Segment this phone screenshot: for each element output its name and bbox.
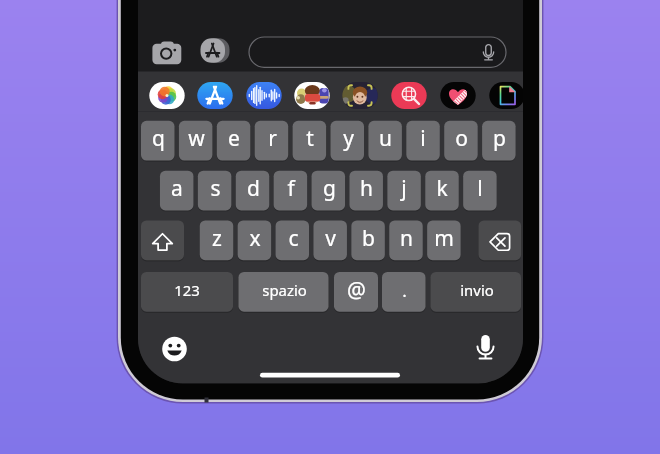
staticText: l <box>477 174 483 203</box>
staticText: a <box>171 174 183 203</box>
staticText: h <box>360 174 373 203</box>
button[interactable]: f <box>274 171 308 211</box>
staticText: e <box>228 124 240 153</box>
staticText: o <box>455 124 468 153</box>
staticText: r <box>268 124 277 153</box>
button[interactable]: App Store <box>200 37 230 65</box>
button[interactable]: r <box>255 121 289 161</box>
staticText: u <box>379 124 392 153</box>
button[interactable]: Camera <box>153 40 183 64</box>
button[interactable]: q <box>141 121 175 161</box>
button[interactable]: d <box>236 171 270 211</box>
button[interactable]: Shift <box>141 221 184 261</box>
button[interactable]: p <box>482 121 516 161</box>
button[interactable]: c <box>276 221 310 261</box>
staticText: q <box>152 124 165 153</box>
button[interactable]: invio <box>431 272 522 312</box>
button[interactable]: t <box>293 121 327 161</box>
button[interactable]: h <box>349 171 383 211</box>
staticText: m <box>434 224 454 253</box>
button[interactable]: a <box>160 171 194 211</box>
staticText: x <box>249 224 261 253</box>
staticText: k <box>436 174 448 203</box>
button[interactable]: u <box>368 121 402 161</box>
button[interactable]: z <box>200 221 234 261</box>
button[interactable]: e <box>217 121 251 161</box>
staticText: s <box>210 174 221 203</box>
staticText: f <box>287 174 295 203</box>
button[interactable]: Dictation <box>473 335 499 361</box>
button[interactable]: s <box>198 171 232 211</box>
button[interactable]: i <box>406 121 440 161</box>
button[interactable]: l <box>463 171 497 211</box>
staticText: spazio <box>262 280 307 300</box>
button[interactable]: m <box>427 221 461 261</box>
staticText: i <box>420 124 426 153</box>
button[interactable]: Emoji keyboard <box>162 337 187 362</box>
staticText: b <box>362 224 375 253</box>
button[interactable]: 123 <box>141 272 233 312</box>
button[interactable]: y <box>331 121 365 161</box>
staticText: t <box>306 124 314 153</box>
staticText: invio <box>460 280 494 300</box>
button[interactable]: k <box>425 171 459 211</box>
staticText: z <box>212 224 222 253</box>
staticText: y <box>343 124 354 153</box>
button[interactable]: o <box>444 121 478 161</box>
button[interactable]: v <box>313 221 347 261</box>
staticText: @ <box>347 276 366 305</box>
button[interactable]: n <box>389 221 423 261</box>
staticText: g <box>323 174 336 203</box>
staticText: 123 <box>174 280 200 300</box>
button[interactable]: x <box>238 221 272 261</box>
button[interactable]: spazio <box>239 272 329 312</box>
button[interactable]: Backspace <box>479 221 522 261</box>
staticText: p <box>493 124 506 153</box>
staticText: . <box>402 279 407 302</box>
staticText: v <box>325 224 336 253</box>
button[interactable]: b <box>351 221 385 261</box>
staticText: w <box>188 124 205 153</box>
staticText: n <box>400 224 413 253</box>
button[interactable]: . <box>382 272 426 312</box>
button[interactable]: w <box>179 121 213 161</box>
button[interactable]: g <box>312 171 346 211</box>
button[interactable]: @ <box>334 272 378 312</box>
staticText: d <box>247 174 260 203</box>
staticText: c <box>288 224 299 253</box>
button[interactable]: Message text field <box>249 37 506 68</box>
staticText: j <box>401 174 407 203</box>
button[interactable]: j <box>387 171 421 211</box>
